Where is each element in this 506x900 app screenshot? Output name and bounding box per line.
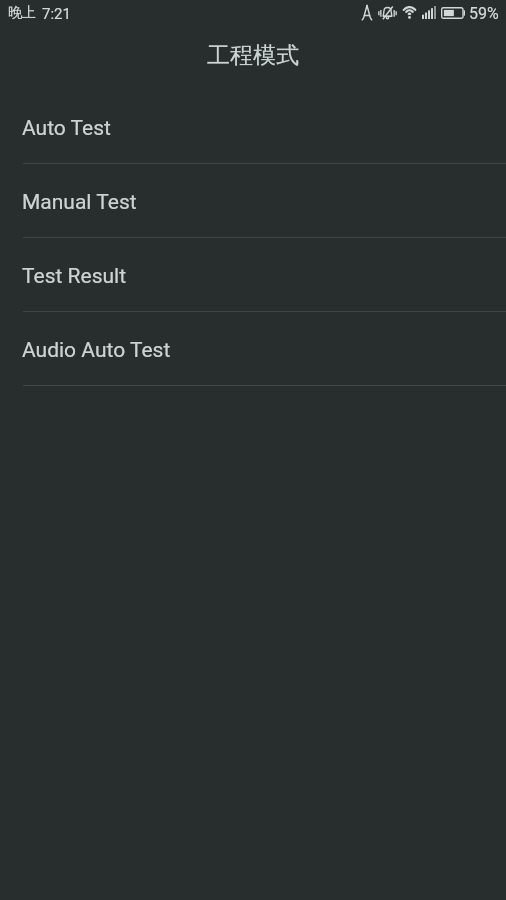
other: Battery 59 percent xyxy=(441,7,465,19)
button[interactable]: Test Result xyxy=(0,238,506,312)
staticText: Auto Test xyxy=(22,116,111,141)
staticText: 晚上 xyxy=(8,4,36,22)
other: Ringer silenced xyxy=(378,5,397,21)
staticText: 59% xyxy=(469,4,499,23)
staticText: Manual Test xyxy=(22,190,137,215)
button[interactable]: Manual Test xyxy=(0,164,506,238)
staticText: 7:21 xyxy=(42,5,71,23)
other: Wi-Fi xyxy=(401,6,418,19)
button[interactable]: Audio Auto Test xyxy=(0,312,506,386)
button[interactable]: Auto Test xyxy=(0,90,506,164)
other: Auto brightness xyxy=(362,5,372,20)
other: Mobile signal xyxy=(422,6,436,19)
staticText: Audio Auto Test xyxy=(22,338,171,363)
staticText: Test Result xyxy=(22,264,127,289)
staticText: 工程模式 xyxy=(207,41,299,70)
